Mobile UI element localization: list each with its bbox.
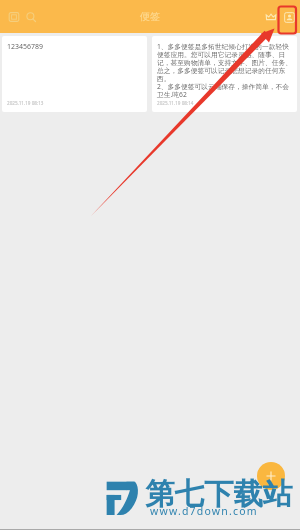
button[interactable]: VIP <box>263 9 279 25</box>
staticText: 123456789 <box>7 42 44 52</box>
staticText: www.d7down.com <box>150 504 258 518</box>
button[interactable]: Add note <box>257 462 285 490</box>
button[interactable]: 1、多多便签是多拓世纪倾心打造的一款轻快便签应用。您可以用它记录灵感、随事、日记… <box>152 36 297 112</box>
staticText: 第七下载站 <box>145 476 293 513</box>
staticText: 2025.11.19 08:13 <box>7 100 44 106</box>
staticText: 2025.11.19 08:14 <box>157 100 194 106</box>
button[interactable]: Photos <box>6 9 22 25</box>
button[interactable]: Search <box>23 9 39 25</box>
staticText: 便签 <box>140 10 160 23</box>
button[interactable]: 123456789 <box>2 36 147 112</box>
button[interactable]: Profile <box>281 9 297 25</box>
staticText: 1、多多便签是多拓世纪倾心打造的一款轻快便签应用。您可以用它记录灵感、随事、日记… <box>157 42 294 99</box>
